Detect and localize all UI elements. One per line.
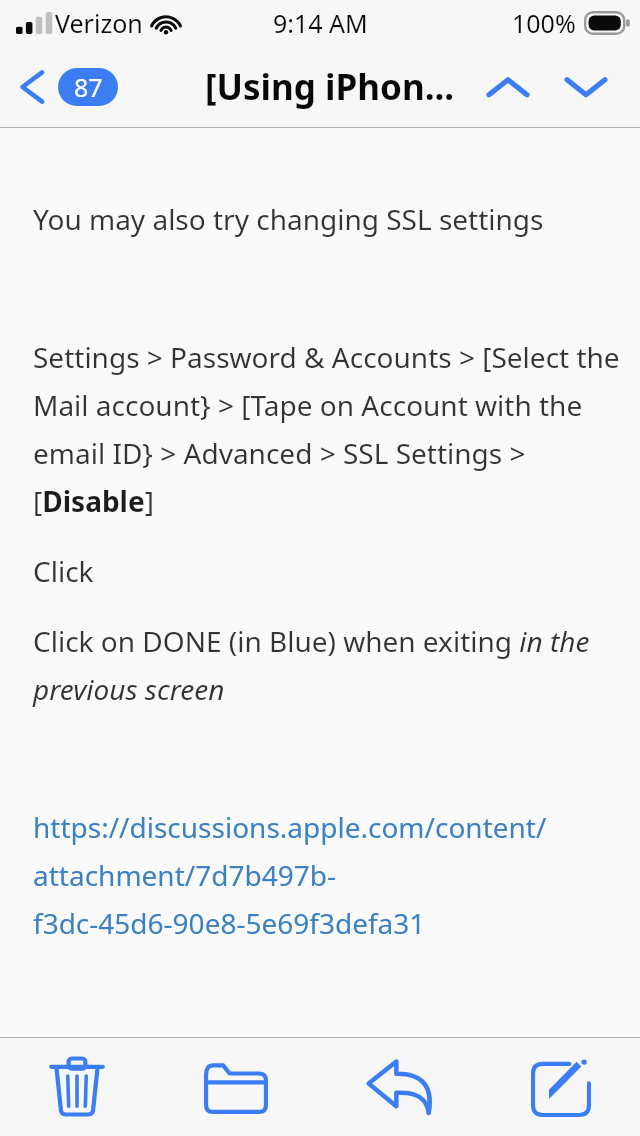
button[interactable]: Compose xyxy=(505,1043,617,1131)
button[interactable]: Delete xyxy=(23,1041,131,1133)
staticText: Click on DONE (in Blue) when exiting in … xyxy=(33,622,620,708)
staticText: Click xyxy=(33,552,94,590)
button[interactable]: Move to folder xyxy=(178,1046,294,1128)
staticText: Verizon xyxy=(55,6,143,40)
staticText: Settings > Password & Accounts > [Select… xyxy=(33,338,620,520)
staticText: 9:14 AM xyxy=(273,6,368,40)
button[interactable]: Next message xyxy=(550,62,622,112)
staticText: 100% xyxy=(512,6,576,40)
staticText: https://discussions.apple.com/content/at… xyxy=(33,808,620,942)
staticText: You may also try changing SSL settings xyxy=(33,200,544,238)
button[interactable]: https://discussions.apple.com/content/at… xyxy=(33,808,620,942)
button[interactable]: Reply xyxy=(340,1044,458,1130)
button[interactable]: Back to mailbox, 87 unread xyxy=(0,57,128,117)
button[interactable]: Previous message xyxy=(472,62,544,112)
staticText: [Using iPhon... xyxy=(205,63,455,111)
staticText: 87 xyxy=(74,70,103,104)
